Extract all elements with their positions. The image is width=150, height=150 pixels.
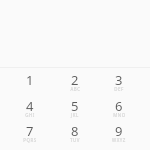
button[interactable]: Dial 4 — [7, 93, 53, 119]
staticText: DEF — [114, 86, 124, 92]
staticText: 7 — [26, 122, 34, 140]
staticText: 5 — [71, 97, 79, 115]
staticText: WXYZ — [112, 137, 126, 143]
button[interactable]: Dial 2 — [52, 67, 98, 93]
button[interactable]: Dial 5 — [52, 93, 98, 119]
staticText: GHI — [25, 112, 35, 118]
staticText: 6 — [115, 97, 123, 115]
staticText: 9 — [115, 122, 123, 140]
staticText: JKL — [71, 112, 79, 118]
staticText: TUV — [70, 137, 80, 143]
staticText: 8 — [71, 122, 79, 140]
staticText: PQRS — [23, 137, 37, 143]
button[interactable]: Dial 8 — [52, 118, 98, 144]
staticText: 2 — [71, 71, 79, 89]
button[interactable]: Dial 9 — [96, 118, 142, 144]
staticText: ABC — [70, 86, 81, 92]
staticText: MNO — [113, 112, 126, 118]
staticText: 1 — [26, 71, 34, 89]
staticText: 4 — [26, 97, 34, 115]
button[interactable]: Dial 7 — [7, 118, 53, 144]
button[interactable]: Dial 1 — [7, 67, 53, 93]
button[interactable]: Dial 3 — [96, 67, 142, 93]
button[interactable]: Dial 6 — [96, 93, 142, 119]
staticText: 3 — [115, 71, 123, 89]
